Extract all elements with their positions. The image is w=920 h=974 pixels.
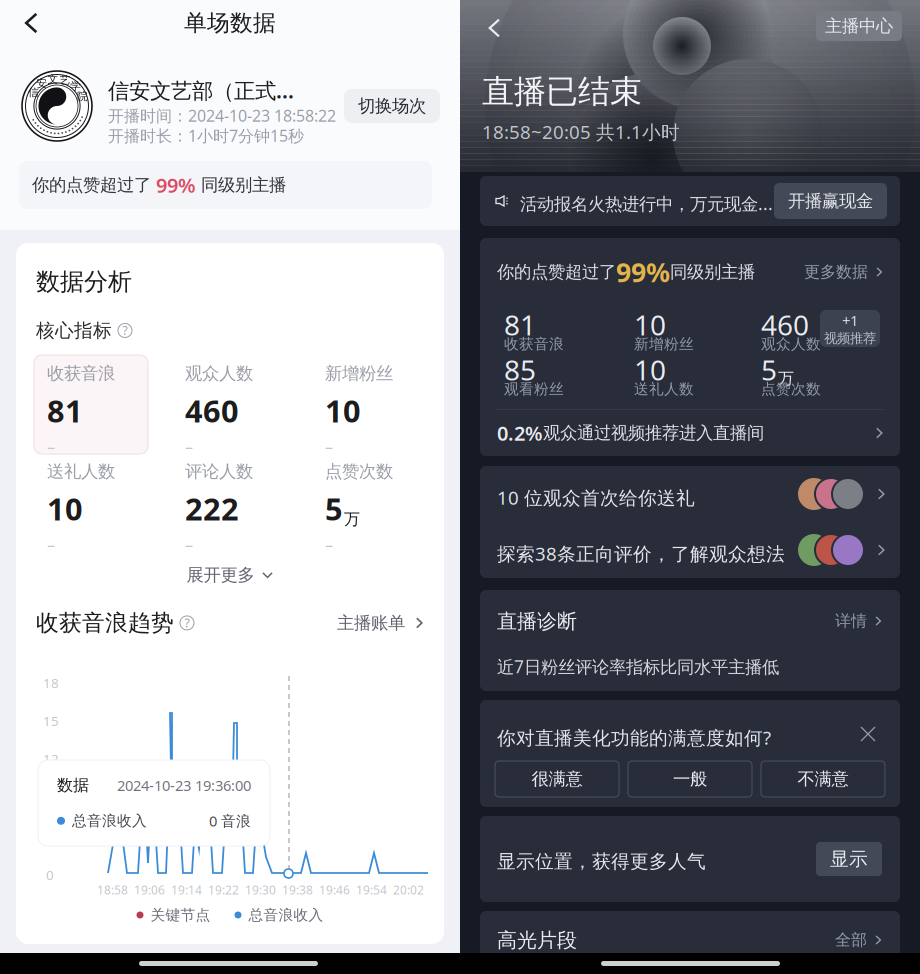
- staticText: 信安文艺部（正式...: [108, 76, 294, 104]
- staticText: 新增粉丝: [634, 335, 694, 353]
- staticText: 万: [344, 509, 360, 529]
- staticText: 15: [43, 712, 59, 730]
- button[interactable]: 主播中心: [816, 11, 902, 41]
- staticText: 近7日粉丝评论率指标比同水平主播低: [497, 655, 779, 678]
- staticText: 评论人数: [185, 461, 253, 482]
- staticText: 观看粉丝: [504, 380, 564, 398]
- staticText: 送礼人数: [47, 461, 115, 482]
- staticText: 显示位置，获得更多人气: [497, 850, 706, 873]
- staticText: +1: [842, 311, 858, 330]
- staticText: 信: [28, 86, 39, 99]
- staticText: 10: [634, 351, 666, 388]
- staticText: 万: [778, 368, 794, 388]
- staticText: 收获音浪: [504, 335, 564, 353]
- staticText: 送礼人数: [634, 380, 694, 398]
- staticText: 很满意: [531, 768, 582, 790]
- staticText: 主播中心: [825, 15, 893, 37]
- button[interactable]: 切换场次: [344, 89, 440, 123]
- staticText: 460: [761, 306, 809, 343]
- staticText: 观众人数: [185, 363, 253, 384]
- staticText: 19:54: [356, 882, 387, 898]
- staticText: 艺: [60, 74, 71, 87]
- staticText: 安: [36, 77, 47, 90]
- staticText: –: [185, 436, 193, 457]
- staticText: 切换场次: [358, 95, 426, 117]
- staticText: 10: [325, 390, 361, 431]
- button[interactable]: Back: [6, 1, 58, 45]
- staticText: –: [47, 534, 55, 555]
- button[interactable]: Close: [852, 718, 884, 750]
- staticText: 19:46: [319, 882, 350, 898]
- staticText: 视频推荐: [824, 330, 876, 346]
- staticText: 开播时长：1小时7分钟15秒: [108, 125, 304, 146]
- button[interactable]: 探索38条正向评价，了解观众想法: [480, 522, 900, 578]
- staticText: 观众通过视频推荐进入直播间: [543, 422, 764, 444]
- staticText: 总音浪收入: [248, 906, 323, 924]
- staticText: ?: [122, 322, 127, 338]
- button[interactable]: 一般: [628, 761, 752, 797]
- button[interactable]: 0.2%: [480, 410, 900, 456]
- staticText: –: [325, 534, 333, 555]
- button[interactable]: 更多数据: [804, 262, 885, 282]
- staticText: 活动报名火热进行中，万元现金...: [520, 192, 773, 215]
- button[interactable]: 展开更多: [16, 559, 444, 591]
- staticText: 18:58~20:05 共1.1小时: [482, 119, 680, 144]
- staticText: 详情: [835, 611, 867, 631]
- staticText: 18: [43, 674, 59, 692]
- button[interactable]: 详情: [822, 607, 884, 635]
- button[interactable]: +1: [820, 310, 880, 347]
- staticText: 收获音浪: [47, 363, 115, 384]
- staticText: 点赞次数: [325, 461, 393, 482]
- staticText: 18:58: [97, 882, 128, 898]
- staticText: 10: [47, 488, 83, 529]
- staticText: 0: [46, 866, 54, 884]
- staticText: 2024-10-23 19:36:00: [117, 775, 251, 795]
- staticText: 99%: [156, 172, 196, 198]
- button[interactable]: 显示: [816, 842, 882, 876]
- staticText: 你的点赞超过了: [32, 174, 156, 196]
- staticText: 12: [43, 750, 59, 768]
- staticText: –: [185, 534, 193, 555]
- staticText: ?: [184, 615, 189, 631]
- button[interactable]: 全部: [822, 926, 884, 954]
- staticText: 直播诊断: [497, 609, 577, 634]
- staticText: 10 位观众首次给你送礼: [497, 485, 695, 510]
- staticText: –: [325, 436, 333, 457]
- staticText: 直播已结束: [482, 72, 642, 111]
- staticText: 85: [504, 351, 536, 388]
- staticText: 19:14: [171, 882, 202, 898]
- staticText: 开播赢现金: [788, 190, 873, 212]
- button[interactable]: 主播账单: [337, 612, 426, 634]
- staticText: 81: [47, 390, 83, 431]
- staticText: 5: [761, 351, 777, 388]
- staticText: 核心指标: [36, 319, 112, 342]
- button[interactable]: 开播赢现金: [774, 183, 887, 219]
- staticText: 新增粉丝: [325, 363, 393, 384]
- staticText: 19:38: [282, 882, 313, 898]
- staticText: 你的点赞超过了: [497, 261, 616, 283]
- staticText: 5: [325, 488, 343, 529]
- staticText: 点赞次数: [761, 380, 821, 398]
- staticText: 全部: [835, 930, 867, 950]
- staticText: 更多数据: [804, 262, 868, 282]
- button[interactable]: 不满意: [761, 761, 885, 797]
- staticText: 20:02: [393, 882, 424, 898]
- staticText: 0 音浪: [209, 811, 251, 831]
- staticText: 222: [185, 488, 239, 529]
- staticText: 99%: [616, 254, 670, 290]
- staticText: 学: [70, 80, 81, 93]
- button[interactable]: Back: [470, 8, 520, 48]
- staticText: 收获音浪趋势: [36, 609, 174, 637]
- staticText: 不满意: [797, 768, 848, 790]
- staticText: 同级别主播: [670, 261, 755, 283]
- staticText: 一般: [673, 768, 707, 790]
- staticText: 文: [48, 73, 59, 86]
- staticText: 关键节点: [150, 906, 210, 924]
- staticText: 高光片段: [497, 928, 577, 953]
- staticText: 19:22: [208, 882, 239, 898]
- staticText: 显示: [830, 847, 868, 870]
- staticText: 10: [634, 306, 666, 343]
- staticText: 探索38条正向评价，了解观众想法: [497, 541, 785, 566]
- button[interactable]: 10 位观众首次给你送礼: [480, 466, 900, 522]
- button[interactable]: 很满意: [495, 761, 619, 797]
